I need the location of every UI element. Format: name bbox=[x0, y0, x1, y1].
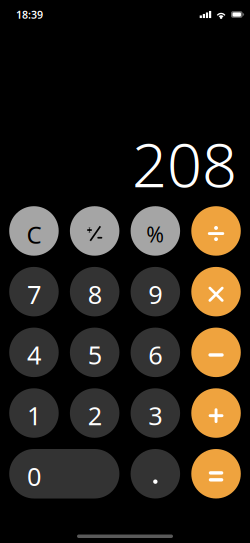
staticText: C bbox=[26, 219, 41, 250]
staticText: 208 bbox=[132, 123, 237, 204]
staticText: 1 bbox=[27, 399, 41, 432]
button[interactable]: Plus Minus bbox=[70, 206, 119, 256]
button[interactable]: Multiply bbox=[191, 267, 241, 316]
staticText: 3 bbox=[148, 399, 162, 432]
staticText: 7 bbox=[27, 277, 41, 311]
staticText: 5 bbox=[88, 338, 102, 371]
button[interactable]: 8 bbox=[70, 267, 119, 316]
staticText: 8 bbox=[88, 277, 102, 311]
staticText: 6 bbox=[148, 338, 162, 371]
button[interactable]: 5 bbox=[70, 328, 119, 377]
button[interactable]: 6 bbox=[131, 328, 180, 377]
staticText: 0 bbox=[27, 459, 41, 493]
button[interactable]: 0 bbox=[9, 449, 119, 498]
button[interactable]: % bbox=[131, 206, 180, 256]
button[interactable]: Minus bbox=[191, 328, 241, 377]
button[interactable]: 2 bbox=[70, 388, 119, 438]
button[interactable]: 3 bbox=[131, 388, 180, 438]
staticText: 4 bbox=[27, 338, 41, 371]
button[interactable]: Divide bbox=[191, 206, 241, 256]
button[interactable]: Plus bbox=[191, 388, 241, 438]
button[interactable]: 9 bbox=[131, 267, 180, 316]
staticText: 2 bbox=[88, 399, 102, 432]
button[interactable]: 1 bbox=[9, 388, 59, 438]
staticText: 9 bbox=[148, 277, 162, 311]
button[interactable]: 4 bbox=[9, 328, 59, 377]
button[interactable]: 7 bbox=[9, 267, 59, 316]
staticText: % bbox=[146, 220, 164, 248]
button[interactable]: C bbox=[9, 206, 59, 256]
button[interactable]: Decimal point bbox=[131, 449, 180, 498]
staticText: 18:39 bbox=[16, 7, 43, 22]
button[interactable]: Equals bbox=[191, 449, 241, 498]
